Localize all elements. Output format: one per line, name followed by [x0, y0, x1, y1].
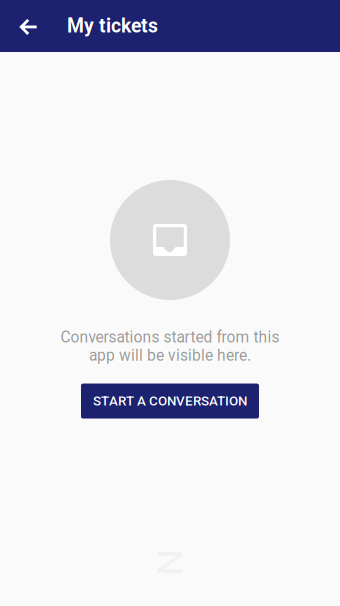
- staticText: app will be visible here.: [89, 346, 251, 365]
- staticText: START A CONVERSATION: [93, 393, 247, 409]
- button[interactable]: START A CONVERSATION: [81, 384, 259, 419]
- button[interactable]: Back: [2, 0, 54, 52]
- staticText: Conversations started from this: [60, 328, 279, 346]
- staticText: My tickets: [67, 15, 158, 37]
